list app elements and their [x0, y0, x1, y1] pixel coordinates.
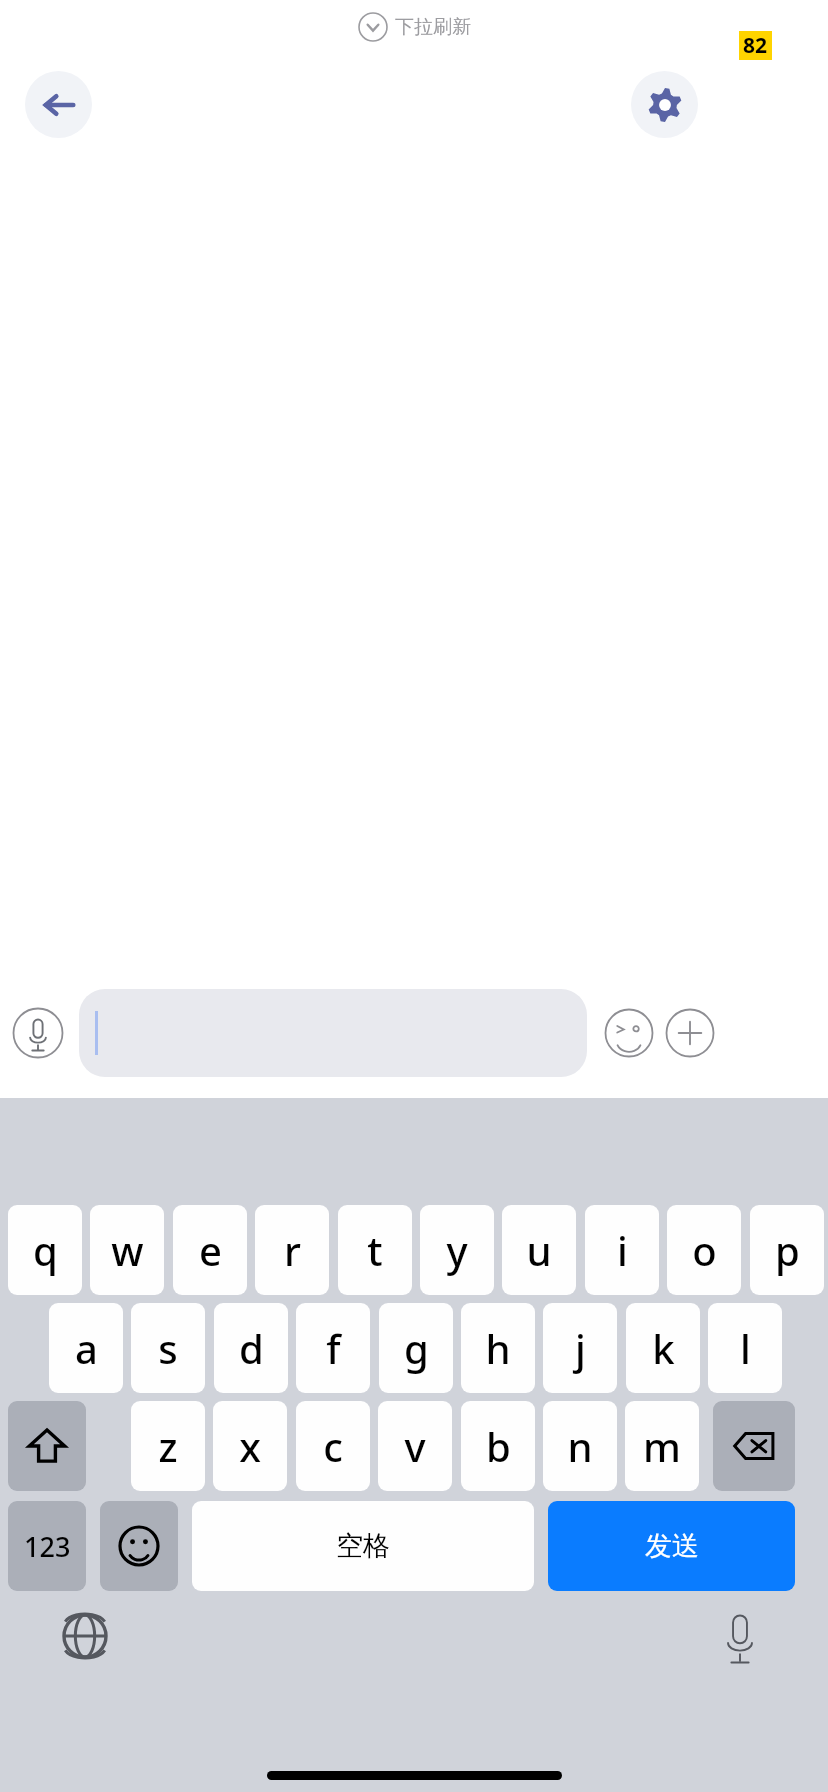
- staticText: m: [643, 1419, 681, 1473]
- button[interactable]: f: [296, 1303, 370, 1393]
- button[interactable]: w: [90, 1205, 164, 1295]
- staticText: z: [158, 1419, 178, 1473]
- button[interactable]: g: [379, 1303, 453, 1393]
- button[interactable]: b: [461, 1401, 535, 1491]
- staticText: u: [526, 1223, 552, 1277]
- button[interactable]: s: [131, 1303, 205, 1393]
- button[interactable]: p: [750, 1205, 824, 1295]
- button[interactable]: j: [543, 1303, 617, 1393]
- staticText: b: [486, 1419, 511, 1473]
- button[interactable]: Switch language: [52, 1603, 118, 1669]
- button[interactable]: o: [667, 1205, 741, 1295]
- staticText: r: [284, 1223, 301, 1277]
- button[interactable]: c: [296, 1401, 370, 1491]
- button[interactable]: Backspace: [713, 1401, 795, 1491]
- button[interactable]: n: [543, 1401, 617, 1491]
- staticText: 下拉刷新: [395, 15, 471, 39]
- staticText: h: [485, 1321, 511, 1375]
- staticText: s: [158, 1321, 178, 1375]
- button[interactable]: Settings: [631, 71, 698, 138]
- staticText: w: [111, 1223, 144, 1277]
- button[interactable]: Emoji: [604, 1008, 654, 1058]
- staticText: y: [446, 1223, 468, 1277]
- button[interactable]: 空格: [192, 1501, 534, 1591]
- button[interactable]: z: [131, 1401, 205, 1491]
- button[interactable]: x: [213, 1401, 287, 1491]
- button[interactable]: h: [461, 1303, 535, 1393]
- button[interactable]: e: [173, 1205, 247, 1295]
- staticText: l: [740, 1321, 751, 1375]
- staticText: c: [323, 1419, 343, 1473]
- staticText: 空格: [336, 1529, 390, 1563]
- staticText: f: [326, 1321, 341, 1375]
- staticText: t: [367, 1223, 383, 1277]
- staticText: x: [239, 1419, 261, 1473]
- button[interactable]: Voice input: [12, 1007, 64, 1059]
- staticText: v: [404, 1419, 426, 1473]
- staticText: q: [33, 1223, 58, 1277]
- button[interactable]: t: [338, 1205, 412, 1295]
- button[interactable]: Emoji keyboard: [100, 1501, 178, 1591]
- staticText: 123: [24, 1528, 71, 1565]
- staticText: 发送: [645, 1529, 699, 1563]
- staticText: d: [239, 1321, 264, 1375]
- button[interactable]: 123: [8, 1501, 86, 1591]
- staticText: e: [199, 1223, 222, 1277]
- button[interactable]: Voice typing: [707, 1603, 773, 1669]
- staticText: p: [775, 1223, 800, 1277]
- button[interactable]: m: [625, 1401, 699, 1491]
- button[interactable]: y: [420, 1205, 494, 1295]
- button[interactable]: a: [49, 1303, 123, 1393]
- button[interactable]: [79, 989, 587, 1077]
- button[interactable]: r: [255, 1205, 329, 1295]
- staticText: a: [75, 1321, 98, 1375]
- staticText: j: [575, 1321, 586, 1375]
- staticText: i: [617, 1223, 628, 1277]
- button[interactable]: d: [214, 1303, 288, 1393]
- staticText: o: [692, 1223, 717, 1277]
- button[interactable]: q: [8, 1205, 82, 1295]
- staticText: n: [567, 1419, 593, 1473]
- button[interactable]: v: [378, 1401, 452, 1491]
- staticText: 82: [743, 31, 768, 60]
- button[interactable]: Shift: [8, 1401, 86, 1491]
- staticText: k: [652, 1321, 675, 1375]
- button[interactable]: u: [502, 1205, 576, 1295]
- staticText: g: [404, 1321, 429, 1375]
- button[interactable]: k: [626, 1303, 700, 1393]
- button[interactable]: i: [585, 1205, 659, 1295]
- button[interactable]: l: [708, 1303, 782, 1393]
- button[interactable]: More: [665, 1008, 715, 1058]
- button[interactable]: Back: [25, 71, 92, 138]
- button[interactable]: 发送: [548, 1501, 795, 1591]
